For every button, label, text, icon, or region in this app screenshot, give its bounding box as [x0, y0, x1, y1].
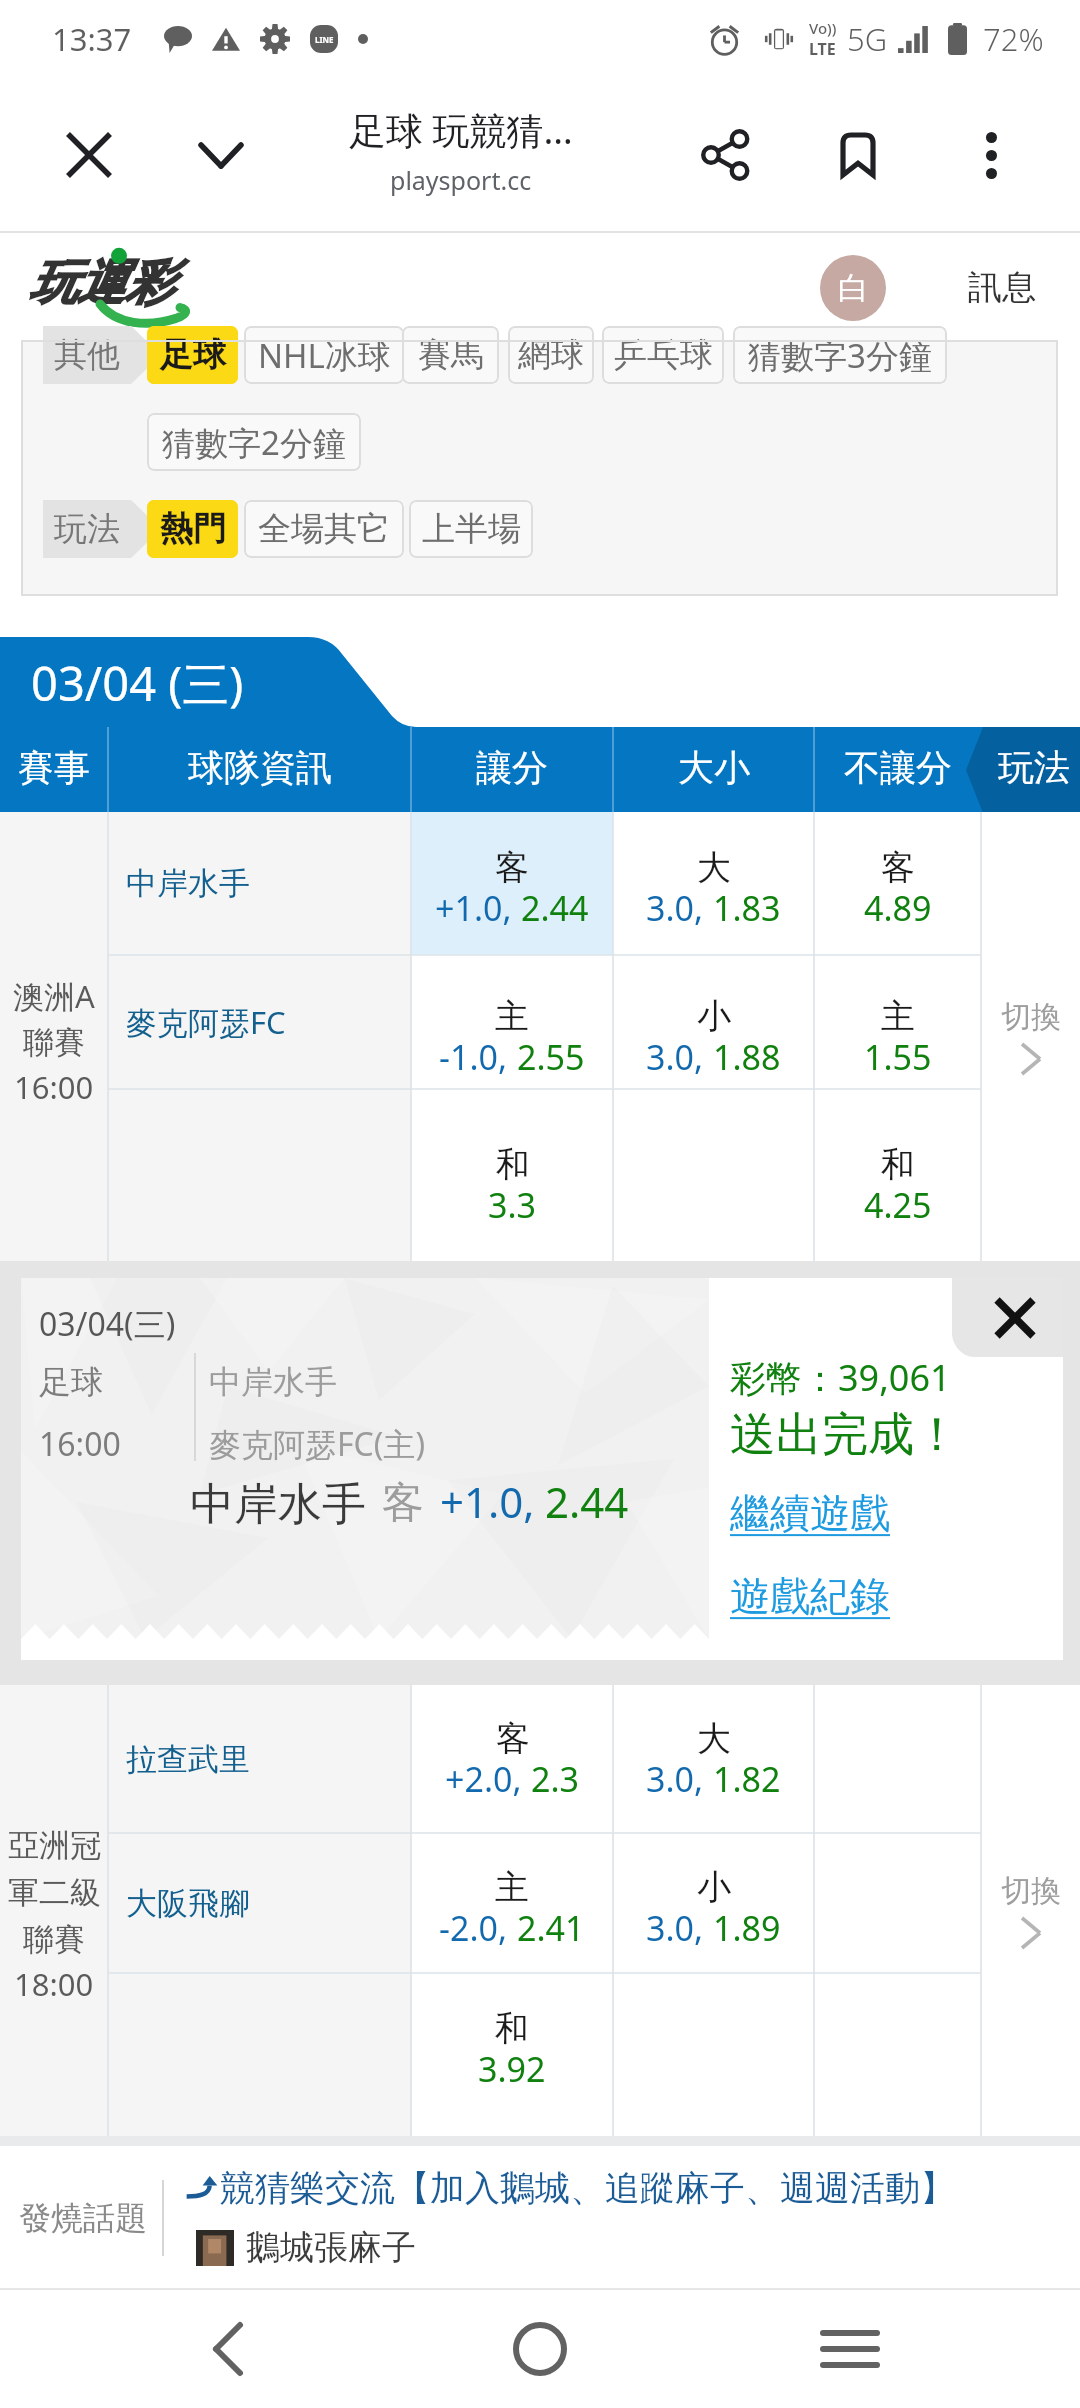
button[interactable]: 足球: [147, 326, 238, 384]
staticText: 2.41: [517, 1905, 585, 1951]
button[interactable]: 客: [411, 812, 613, 955]
button[interactable]: 小: [613, 955, 814, 1089]
button[interactable]: 大: [613, 1685, 814, 1833]
button[interactable]: 上半場: [409, 500, 533, 558]
staticText: 其他: [54, 334, 120, 376]
button[interactable]: 玩法: [987, 727, 1080, 813]
staticText: 03/04 (三): [31, 651, 244, 715]
button[interactable]: 主: [411, 1833, 613, 1973]
staticText: 乒乓球: [614, 334, 713, 376]
staticText: 1.55: [864, 1034, 932, 1080]
button[interactable]: 大阪飛腳: [108, 1833, 411, 1973]
staticText: 客: [881, 846, 915, 889]
button[interactable]: 主: [814, 955, 981, 1089]
button[interactable]: 玩運彩 home: [28, 241, 228, 331]
button[interactable]: Recent apps: [770, 2290, 930, 2408]
button[interactable]: 小: [613, 1833, 814, 1973]
staticText: 16:00: [14, 1066, 94, 1108]
staticText: 03/04(三): [39, 1302, 176, 1346]
staticText: 麥克阿瑟FC(主): [209, 1422, 426, 1466]
button[interactable]: [613, 1089, 814, 1263]
button[interactable]: 球隊資訊: [108, 727, 411, 813]
button[interactable]: 切換: [981, 812, 1080, 1262]
staticText: 3.0,: [646, 1756, 704, 1802]
button[interactable]: 讓分: [411, 727, 613, 813]
button[interactable]: 遊戲紀錄: [730, 1571, 890, 1621]
staticText: 大小: [678, 745, 750, 790]
staticText: 送出完成！: [730, 1406, 960, 1464]
button[interactable]: 客: [411, 1685, 613, 1833]
staticText: 熱門: [160, 508, 226, 550]
button[interactable]: NHL冰球: [244, 326, 404, 384]
staticText: 球隊資訊: [188, 745, 332, 790]
button[interactable]: 主: [411, 955, 613, 1089]
button[interactable]: [613, 1973, 814, 2135]
button[interactable]: 其他: [43, 326, 161, 384]
button[interactable]: 中岸水手: [108, 812, 411, 955]
button[interactable]: 切換: [981, 1685, 1080, 2136]
button[interactable]: 乒乓球: [602, 326, 724, 384]
button[interactable]: 和: [411, 1973, 613, 2135]
button[interactable]: Share: [681, 110, 771, 200]
button[interactable]: [814, 1973, 981, 2135]
button[interactable]: 和: [411, 1089, 613, 1263]
staticText: 3.0,: [646, 1034, 704, 1080]
button[interactable]: [814, 1833, 981, 1973]
button[interactable]: 熱門: [147, 500, 238, 558]
button[interactable]: 大小: [613, 727, 814, 813]
staticText: 1.89: [713, 1905, 781, 1951]
staticText: -1.0,: [439, 1034, 508, 1080]
button[interactable]: More options: [946, 110, 1036, 200]
button[interactable]: 賽事: [0, 727, 108, 813]
button[interactable]: Profile: [820, 255, 886, 321]
staticText: Vo)): [809, 18, 837, 38]
button[interactable]: Expand toolbar: [176, 110, 266, 200]
staticText: 切換: [1001, 1872, 1061, 1910]
staticText: 和: [496, 1143, 530, 1186]
button[interactable]: 麥克阿瑟FC: [108, 955, 411, 1089]
staticText: 玩運彩: [29, 253, 173, 313]
staticText: 和: [495, 2007, 529, 2050]
staticText: 彩幣：39,061: [730, 1353, 951, 1402]
staticText: 主: [881, 995, 915, 1038]
button[interactable]: [814, 1685, 981, 1833]
button[interactable]: 全場其它: [244, 500, 404, 558]
button[interactable]: 猜數字2分鐘: [147, 413, 361, 471]
staticText: 聯賽: [23, 1920, 85, 1959]
button[interactable]: 網球: [508, 326, 594, 384]
staticText: 鵝城張麻子: [246, 2226, 416, 2269]
staticText: 主: [495, 1866, 529, 1909]
staticText: 2.3: [531, 1756, 580, 1802]
button[interactable]: Bookmark: [813, 110, 903, 200]
staticText: 2.55: [517, 1034, 585, 1080]
staticText: 16:00: [39, 1422, 121, 1466]
staticText: 軍二級: [8, 1873, 101, 1912]
button[interactable]: 繼續遊戲: [730, 1488, 890, 1538]
button[interactable]: 大: [613, 812, 814, 955]
button[interactable]: 和: [814, 1089, 981, 1263]
staticText: 72%: [983, 18, 1044, 60]
button[interactable]: 賽馬: [402, 326, 499, 384]
button[interactable]: Close: [44, 110, 134, 200]
staticText: 18:00: [14, 1963, 94, 2005]
button[interactable]: Home: [460, 2290, 620, 2408]
staticText: 大: [697, 1717, 731, 1760]
button[interactable]: 猜數字3分鐘: [733, 326, 947, 384]
button[interactable]: 訊息: [956, 257, 1048, 317]
button[interactable]: Back: [148, 2290, 308, 2408]
staticText: 1.82: [713, 1756, 781, 1802]
button[interactable]: 客: [814, 812, 981, 955]
staticText: 賽事: [18, 745, 90, 790]
staticText: 上半場: [422, 508, 521, 550]
staticText: 全場其它: [258, 508, 390, 550]
staticText: 大: [697, 846, 731, 889]
button[interactable]: Close ticket: [975, 1278, 1055, 1358]
button[interactable]: 拉查武里: [108, 1685, 411, 1833]
staticText: 澳洲A: [13, 975, 95, 1017]
staticText: 中岸水手: [190, 1477, 366, 1532]
button[interactable]: 不讓分: [814, 727, 981, 813]
button[interactable]: 競猜樂交流【加入鵝城、追蹤麻子、週週活動】: [186, 2166, 955, 2210]
button[interactable]: 玩法: [43, 500, 161, 558]
